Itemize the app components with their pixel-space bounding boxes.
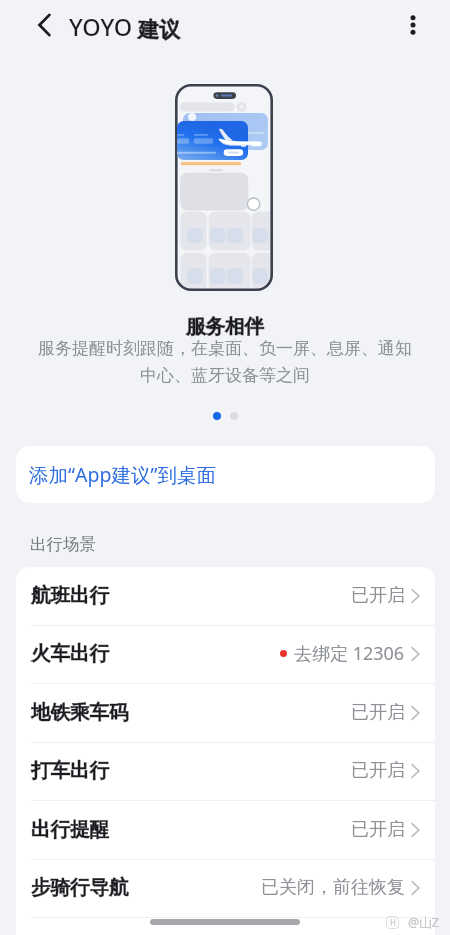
staticText: H	[390, 917, 396, 928]
staticText: 步骑行导航	[31, 875, 129, 900]
button[interactable]: 公交出行	[16, 918, 435, 935]
staticText: 打车出行	[31, 758, 109, 783]
staticText: 火车出行	[31, 641, 109, 666]
staticText: 已开启	[351, 759, 405, 782]
staticText: 已关闭，前往恢复	[261, 876, 405, 899]
button[interactable]: 航班出行	[16, 567, 435, 624]
staticText: 已开启	[351, 701, 405, 724]
staticText: 出行提醒	[31, 817, 109, 842]
staticText: 去绑定 12306	[294, 641, 405, 666]
staticText: @山Z	[408, 914, 439, 931]
staticText: 服务相伴	[186, 314, 264, 339]
staticText: 地铁乘车码	[31, 700, 129, 725]
staticText: 航班出行	[31, 583, 109, 608]
staticText: 地铁乘车码	[31, 700, 129, 725]
button[interactable]: 添加“App建议”到桌面	[16, 446, 435, 503]
staticText: 服务相伴	[186, 314, 264, 339]
button[interactable]: 出行提醒	[16, 801, 435, 858]
staticText: YOYO	[69, 11, 133, 43]
staticText: 已开启	[351, 818, 405, 841]
staticText: 建议	[138, 17, 180, 43]
staticText: 出行场景	[30, 534, 96, 555]
staticText: 步骑行导航	[31, 875, 129, 900]
staticText: 火车出行	[31, 641, 109, 666]
staticText: 添加“App建议”到桌面	[29, 461, 216, 488]
staticText: 打车出行	[31, 758, 109, 783]
button[interactable]: More options	[398, 10, 428, 40]
button[interactable]: 步骑行导航	[16, 859, 435, 916]
button[interactable]: 地铁乘车码	[16, 684, 435, 741]
button[interactable]: 打车出行	[16, 742, 435, 799]
staticText: 航班出行	[31, 583, 109, 608]
staticText: 已开启	[351, 584, 405, 607]
button[interactable]: 火车出行	[16, 625, 435, 682]
staticText: 出行提醒	[31, 817, 109, 842]
staticText: 服务提醒时刻跟随，在桌面、负一屏、息屏、通知中心、蓝牙设备等之间	[30, 338, 420, 386]
staticText: 建议	[138, 17, 180, 43]
button[interactable]: Back	[30, 10, 60, 40]
